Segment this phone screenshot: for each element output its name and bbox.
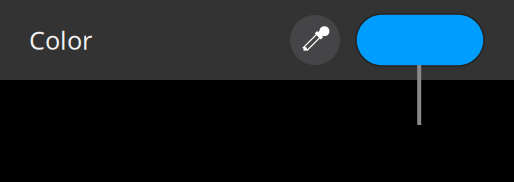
button[interactable]: Pick colour with eyedropper [290,15,340,65]
button[interactable]: Selected colour [356,14,484,66]
staticText: Color [29,23,92,57]
